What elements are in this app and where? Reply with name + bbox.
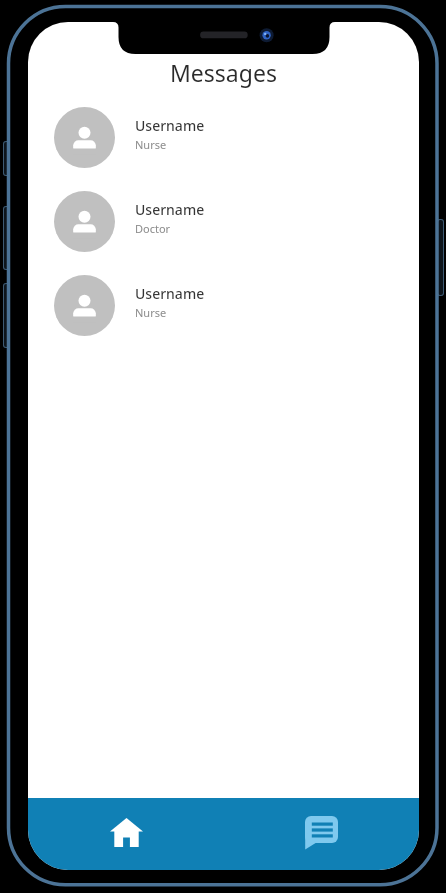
button[interactable]: Username [28,263,419,347]
staticText: Doctor [135,221,171,236]
staticText: Messages [170,57,277,88]
staticText: Username [135,284,205,303]
staticText: Nurse [135,137,167,152]
staticText: Username [135,200,205,219]
button[interactable]: Username [28,95,419,179]
staticText: Nurse [135,305,167,320]
button[interactable] [110,818,143,847]
button[interactable] [305,816,338,849]
button[interactable]: Username [28,179,419,263]
staticText: Username [135,116,205,135]
